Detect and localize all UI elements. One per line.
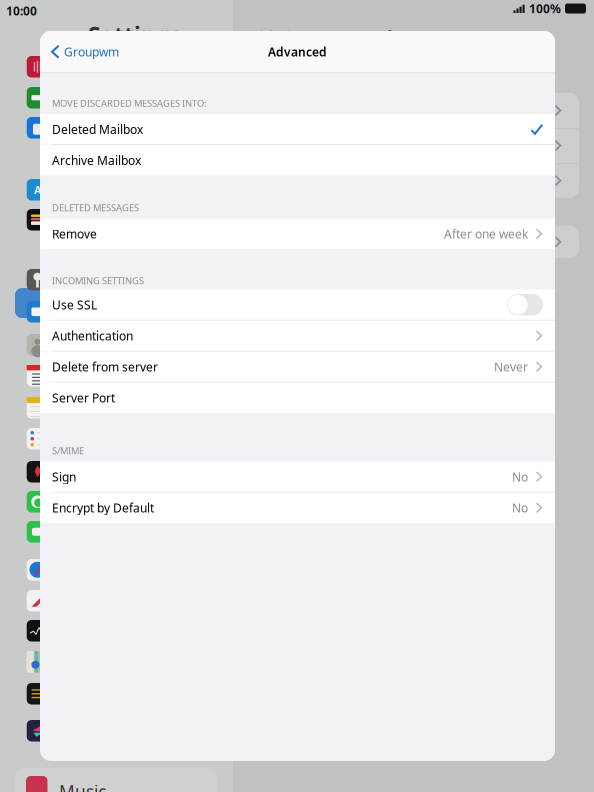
- staticText: S/MIME: [52, 444, 84, 457]
- staticText: Use SSL: [52, 297, 97, 313]
- staticText: Music: [59, 780, 106, 792]
- staticText: After one week: [444, 226, 528, 242]
- staticText: DELETED MESSAGES: [52, 201, 139, 214]
- staticText: A: [34, 183, 41, 197]
- button[interactable]: Server Port: [40, 383, 555, 413]
- button[interactable]: Remove: [40, 219, 555, 249]
- staticText: Remove: [52, 226, 97, 242]
- staticText: INCOMING SETTINGS: [52, 274, 144, 287]
- button[interactable]: Delete from server: [40, 352, 555, 382]
- staticText: Deleted Mailbox: [52, 121, 143, 137]
- staticText: Settings: [88, 20, 181, 50]
- button[interactable]: Sign: [40, 462, 555, 492]
- button[interactable]: Archive Mailbox: [40, 145, 555, 175]
- staticText: Advanced: [268, 44, 327, 60]
- staticText: No: [512, 500, 528, 516]
- staticText: Mail: [259, 26, 291, 47]
- button[interactable]: Deleted Mailbox: [40, 114, 555, 144]
- staticText: 100%: [529, 0, 561, 16]
- staticText: Groupwm: [64, 44, 119, 60]
- staticText: Delete from server: [52, 359, 158, 375]
- staticText: Server Port: [52, 390, 115, 406]
- staticText: No: [512, 469, 528, 485]
- button[interactable]: Groupwm: [40, 31, 127, 72]
- button[interactable]: Authentication: [40, 321, 555, 351]
- staticText: MOVE DISCARDED MESSAGES INTO:: [52, 97, 207, 109]
- staticText: Account: [384, 25, 454, 48]
- button[interactable]: Use SSL: [40, 290, 555, 320]
- staticText: 10:00: [6, 3, 37, 19]
- staticText: Sign: [52, 469, 76, 485]
- staticText: Encrypt by Default: [52, 500, 154, 516]
- staticText: Never: [494, 359, 528, 375]
- staticText: Archive Mailbox: [52, 152, 141, 168]
- staticText: Authentication: [52, 328, 133, 344]
- button[interactable]: Encrypt by Default: [40, 493, 555, 523]
